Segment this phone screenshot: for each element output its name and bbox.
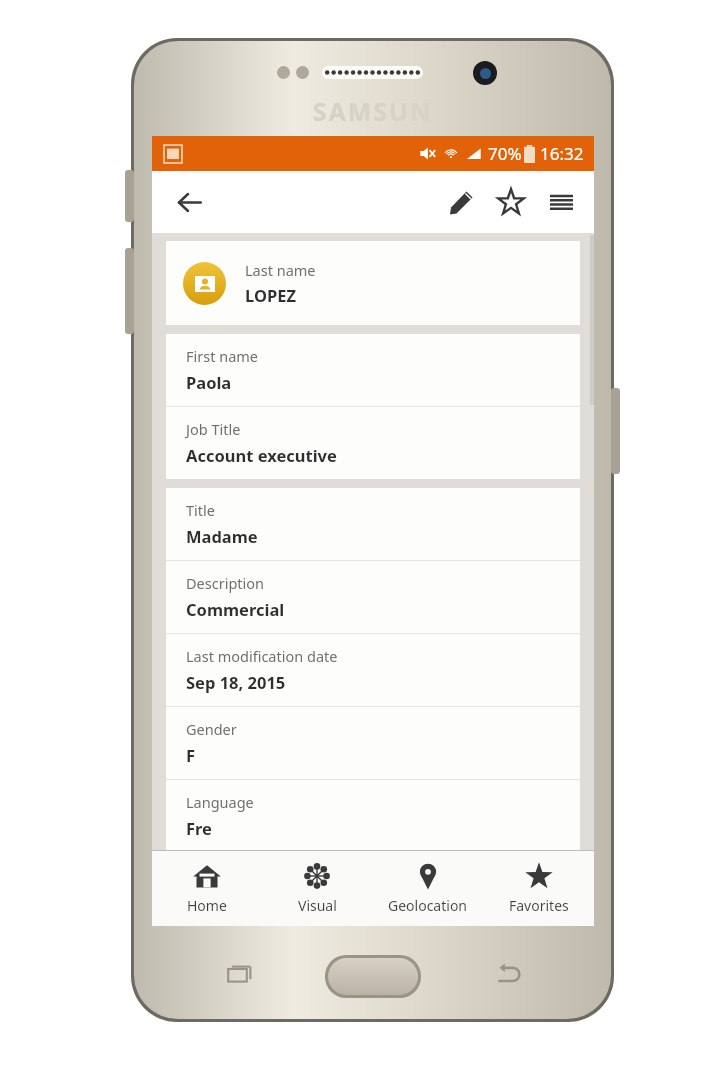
staticText: Madame [186,525,258,547]
staticText: Home [187,896,227,915]
button[interactable]: First name [166,334,580,406]
staticText: Last name [245,260,316,280]
button[interactable]: Favorite [486,177,536,227]
button[interactable]: Home [152,850,262,926]
staticText: F [186,744,196,766]
staticText: Description [186,573,265,593]
button[interactable]: Description [166,561,580,633]
button[interactable]: Back [166,179,212,225]
button[interactable]: Geolocation [372,850,483,926]
button[interactable]: Title [166,488,580,560]
staticText: Language [186,792,254,812]
staticText: 16:32 [540,142,584,165]
staticText: Account executive [186,444,337,466]
button[interactable]: Edit [436,177,486,227]
staticText: Fre [186,817,212,837]
button[interactable]: Menu [536,177,586,227]
staticText: LOPEZ [245,284,296,306]
button[interactable]: Gender [166,707,580,779]
staticText: Favorites [509,896,569,915]
staticText: Commercial [186,598,285,620]
staticText: Last modification date [186,646,338,666]
button[interactable]: Favorites [483,850,594,926]
staticText: 70% [488,142,522,165]
staticText: First name [186,346,259,366]
staticText: Geolocation [388,896,468,915]
staticText: Job Title [186,419,241,439]
button[interactable]: Job Title [166,407,580,479]
button[interactable]: Visual [262,850,372,926]
staticText: Sep 18, 2015 [186,671,286,693]
staticText: Paola [186,371,232,393]
staticText: Gender [186,719,237,739]
staticText: Title [186,500,215,520]
button[interactable]: Last name [166,241,580,325]
button[interactable]: Language [166,780,580,850]
staticText: SAMSUNG [303,94,442,162]
staticText: Visual [298,896,337,915]
button[interactable]: Last modification date [166,634,580,706]
